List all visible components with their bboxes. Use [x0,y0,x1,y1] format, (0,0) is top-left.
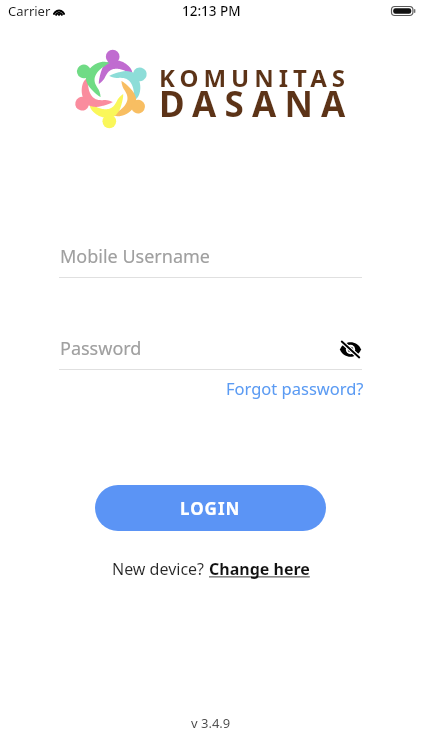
staticText: 12:13 PM [182,2,241,20]
button[interactable]: LOGIN [95,485,326,531]
staticText: Mobile Username [60,244,210,269]
staticText: LOGIN [180,497,241,520]
staticText: Carrier [8,2,51,20]
staticText: New device? [112,558,209,580]
button[interactable]: Forgot password? [225,374,365,402]
staticText: Change here [209,558,310,580]
staticText: KOMUNITAS [159,61,351,94]
button[interactable]: Change here [209,558,310,580]
staticText: Forgot password? [226,377,364,399]
staticText: DASANA [159,80,354,128]
button[interactable]: Password [59,332,362,370]
staticText: v 3.4.9 [191,714,231,732]
staticText: Password [60,336,142,361]
button[interactable]: Mobile Username [59,240,362,278]
button[interactable]: Show password [335,334,365,364]
